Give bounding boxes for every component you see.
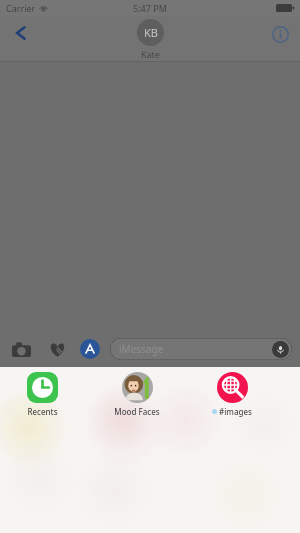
button[interactable]: Digital Touch bbox=[44, 336, 70, 362]
button[interactable]: Recents bbox=[10, 372, 74, 417]
button[interactable]: Details bbox=[266, 20, 294, 48]
button[interactable]: KB bbox=[137, 19, 164, 60]
staticText: Kate bbox=[141, 48, 160, 60]
staticText: Mood Faces bbox=[114, 406, 160, 417]
staticText: 5:47 PM bbox=[133, 2, 167, 14]
staticText: KB bbox=[144, 25, 158, 40]
staticText: #images bbox=[219, 406, 252, 417]
button[interactable]: Back bbox=[6, 18, 36, 48]
button[interactable]: Camera bbox=[8, 336, 34, 362]
staticText: Recents bbox=[27, 406, 58, 417]
button[interactable]: Mood Faces bbox=[105, 372, 169, 417]
button[interactable]: App Store bbox=[80, 339, 100, 359]
button[interactable]: iMessage bbox=[110, 338, 292, 360]
button[interactable]: #images bbox=[200, 372, 264, 417]
button[interactable]: Dictate bbox=[272, 341, 289, 358]
staticText: Carrier bbox=[6, 2, 36, 14]
staticText: iMessage bbox=[119, 342, 164, 356]
